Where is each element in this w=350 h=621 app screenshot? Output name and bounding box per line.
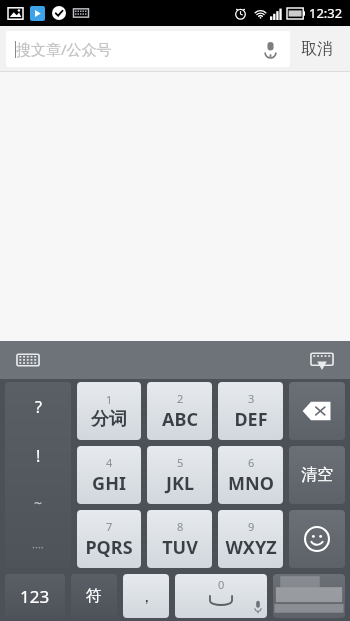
staticText: MNO	[228, 471, 274, 496]
button[interactable]: 搜文章/公众号	[6, 31, 290, 67]
staticText: JKL	[166, 471, 194, 496]
button[interactable]: Search	[273, 574, 345, 618]
staticText: 4	[106, 455, 113, 470]
button[interactable]: 4	[77, 446, 141, 504]
staticText: 2	[177, 391, 184, 406]
staticText: PQRS	[85, 535, 133, 560]
staticText: ?	[35, 396, 42, 418]
staticText: DEF	[234, 407, 268, 432]
button[interactable]: 2	[147, 382, 212, 440]
staticText: 符	[86, 586, 102, 606]
button[interactable]: 7	[77, 510, 141, 568]
staticText: ~	[34, 493, 43, 512]
staticText: 3	[248, 391, 255, 406]
staticText: !	[36, 445, 41, 467]
staticText: ····	[32, 539, 44, 554]
button[interactable]: 6	[218, 446, 283, 504]
button[interactable]: 9	[218, 510, 283, 568]
button[interactable]: Voice search	[258, 37, 282, 61]
button[interactable]: Space	[175, 574, 267, 618]
button[interactable]: 1	[77, 382, 141, 440]
button[interactable]: 3	[218, 382, 283, 440]
staticText: 分词	[91, 408, 127, 431]
staticText: ABC	[162, 407, 198, 432]
staticText: 0	[218, 577, 225, 592]
staticText: 清空	[301, 465, 333, 485]
staticText: WXYZ	[225, 535, 277, 560]
button[interactable]: 123	[5, 574, 65, 618]
staticText: 取消	[301, 39, 333, 59]
staticText: 6	[248, 455, 255, 470]
staticText: 12:32	[309, 4, 343, 22]
button[interactable]: 符	[71, 574, 117, 618]
button[interactable]: Switch keyboard	[14, 346, 42, 374]
staticText: 123	[20, 585, 50, 608]
button[interactable]: Backspace	[289, 382, 345, 440]
staticText: 8	[177, 519, 184, 534]
staticText: GHI	[92, 471, 126, 496]
staticText: ，	[138, 586, 155, 607]
button[interactable]: 取消	[290, 31, 344, 67]
staticText: 1	[106, 392, 113, 407]
button[interactable]: 5	[147, 446, 212, 504]
staticText: TUV	[162, 535, 198, 560]
staticText: 5	[177, 455, 184, 470]
staticText: 7	[106, 519, 113, 534]
button[interactable]: Punctuation	[5, 382, 71, 568]
button[interactable]: ，	[123, 574, 169, 618]
button[interactable]: 清空	[289, 446, 345, 504]
button[interactable]: Hide keyboard	[308, 346, 336, 374]
staticText: 搜文章/公众号	[16, 39, 112, 59]
staticText: 9	[248, 519, 255, 534]
button[interactable]: Emoji	[289, 510, 345, 568]
button[interactable]: 8	[147, 510, 212, 568]
